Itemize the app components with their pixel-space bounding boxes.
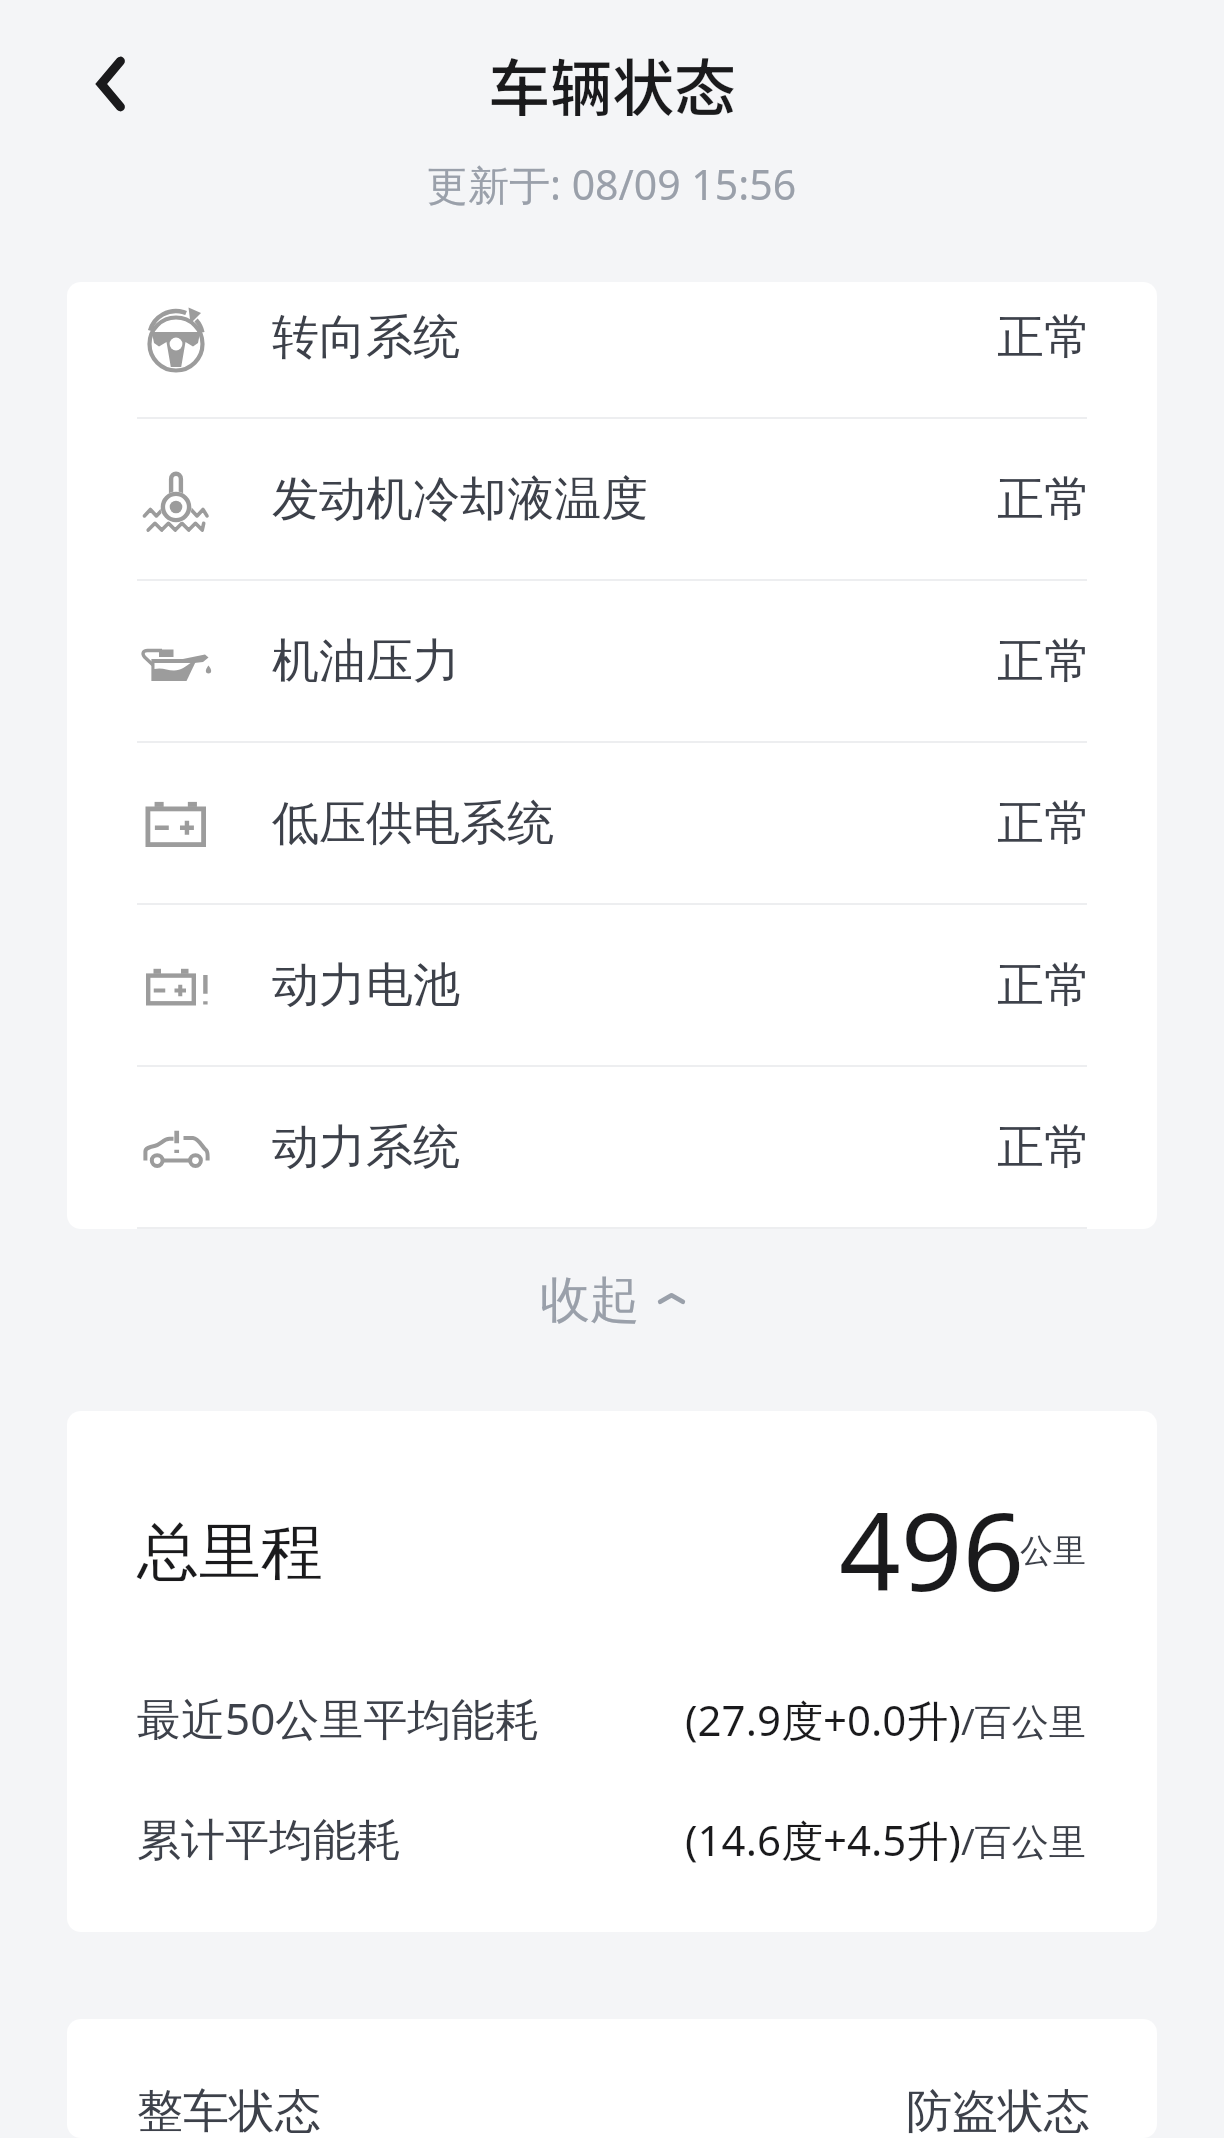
button[interactable]: 发动机冷却液温度 <box>67 419 1157 579</box>
button[interactable]: Back <box>64 38 156 130</box>
staticText: 总里程 <box>137 1513 323 1591</box>
staticText: 496 <box>839 1476 1025 1623</box>
staticText: 正常 <box>997 794 1091 853</box>
staticText: 低压供电系统 <box>272 794 554 853</box>
staticText: 动力电池 <box>272 956 460 1015</box>
staticText: 累计平均能耗 <box>137 1813 401 1868</box>
staticText: 机油压力 <box>272 632 460 691</box>
staticText: 最近50公里平均能耗 <box>137 1688 540 1748</box>
staticText: 更新于: 08/09 15:56 <box>427 156 797 212</box>
button[interactable]: 机油压力 <box>67 581 1157 741</box>
staticText: 发动机冷却液温度 <box>272 470 648 529</box>
staticText: 正常 <box>997 632 1091 691</box>
button[interactable]: 动力电池 <box>67 905 1157 1065</box>
staticText: 公里 <box>1020 1530 1086 1572</box>
button[interactable]: 转向系统 <box>67 282 1157 417</box>
staticText: 正常 <box>997 470 1091 529</box>
staticText: (14.6度+4.5升) <box>685 1811 961 1868</box>
button[interactable]: 收起 <box>0 1229 1224 1411</box>
staticText: /百公里 <box>961 1815 1086 1866</box>
button[interactable]: 总里程 <box>67 1411 1157 1932</box>
button[interactable]: 整车状态 <box>67 2019 1157 2138</box>
staticText: /百公里 <box>961 1695 1086 1746</box>
staticText: 正常 <box>997 956 1091 1015</box>
staticText: 正常 <box>997 308 1091 367</box>
staticText: (27.9度+0.0升) <box>685 1691 961 1748</box>
staticText: 动力系统 <box>272 1118 460 1177</box>
staticText: 车辆状态 <box>488 39 737 129</box>
staticText: 收起 <box>540 1269 640 1332</box>
button[interactable]: 低压供电系统 <box>67 743 1157 903</box>
staticText: 转向系统 <box>272 308 460 367</box>
staticText: 防盗状态 <box>906 2083 1090 2138</box>
staticText: 整车状态 <box>137 2083 321 2138</box>
staticText: 正常 <box>997 1118 1091 1177</box>
button[interactable]: 动力系统 <box>67 1067 1157 1227</box>
